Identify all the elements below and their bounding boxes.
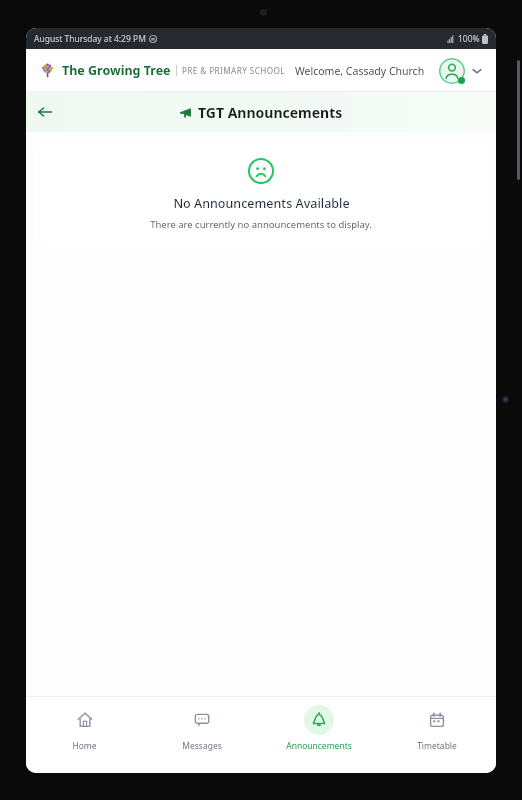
staticText: Messages <box>182 740 222 752</box>
button[interactable]: Open menu <box>470 64 484 78</box>
button[interactable]: Home <box>26 697 143 773</box>
staticText: Home <box>72 740 97 752</box>
staticText: Timetable <box>417 740 457 752</box>
staticText: No Announcements Available <box>173 195 350 212</box>
staticText: There are currently no announcements to … <box>150 218 372 231</box>
staticText: The Growing Tree <box>62 62 171 79</box>
button[interactable]: Timetable <box>378 697 496 773</box>
staticText: 100% <box>458 33 480 45</box>
staticText: Welcome, Cassady Church <box>295 64 425 78</box>
button[interactable]: Messages <box>143 697 260 773</box>
staticText: PRE & PRIMARY SCHOOL <box>182 65 285 76</box>
button[interactable]: Announcements <box>260 697 378 773</box>
button[interactable]: Back <box>34 101 56 123</box>
staticText: August Thursday at 4:29 PM <box>34 33 146 45</box>
staticText: TGT Announcements <box>198 103 343 122</box>
staticText: Announcements <box>286 740 352 752</box>
button[interactable]: Profile <box>439 58 465 84</box>
